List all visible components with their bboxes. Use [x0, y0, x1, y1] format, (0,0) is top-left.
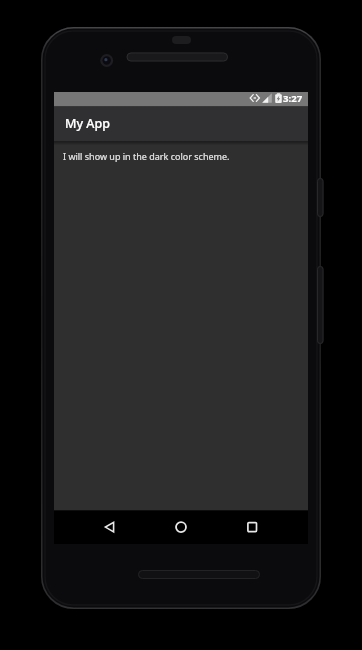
- button[interactable]: [230, 511, 274, 544]
- button[interactable]: [88, 511, 132, 544]
- staticText: My App: [65, 115, 111, 132]
- button[interactable]: [159, 511, 203, 544]
- button[interactable]: My App: [54, 106, 254, 141]
- staticText: I will show up in the dark color scheme.: [63, 150, 230, 162]
- staticText: 3:27: [283, 92, 303, 105]
